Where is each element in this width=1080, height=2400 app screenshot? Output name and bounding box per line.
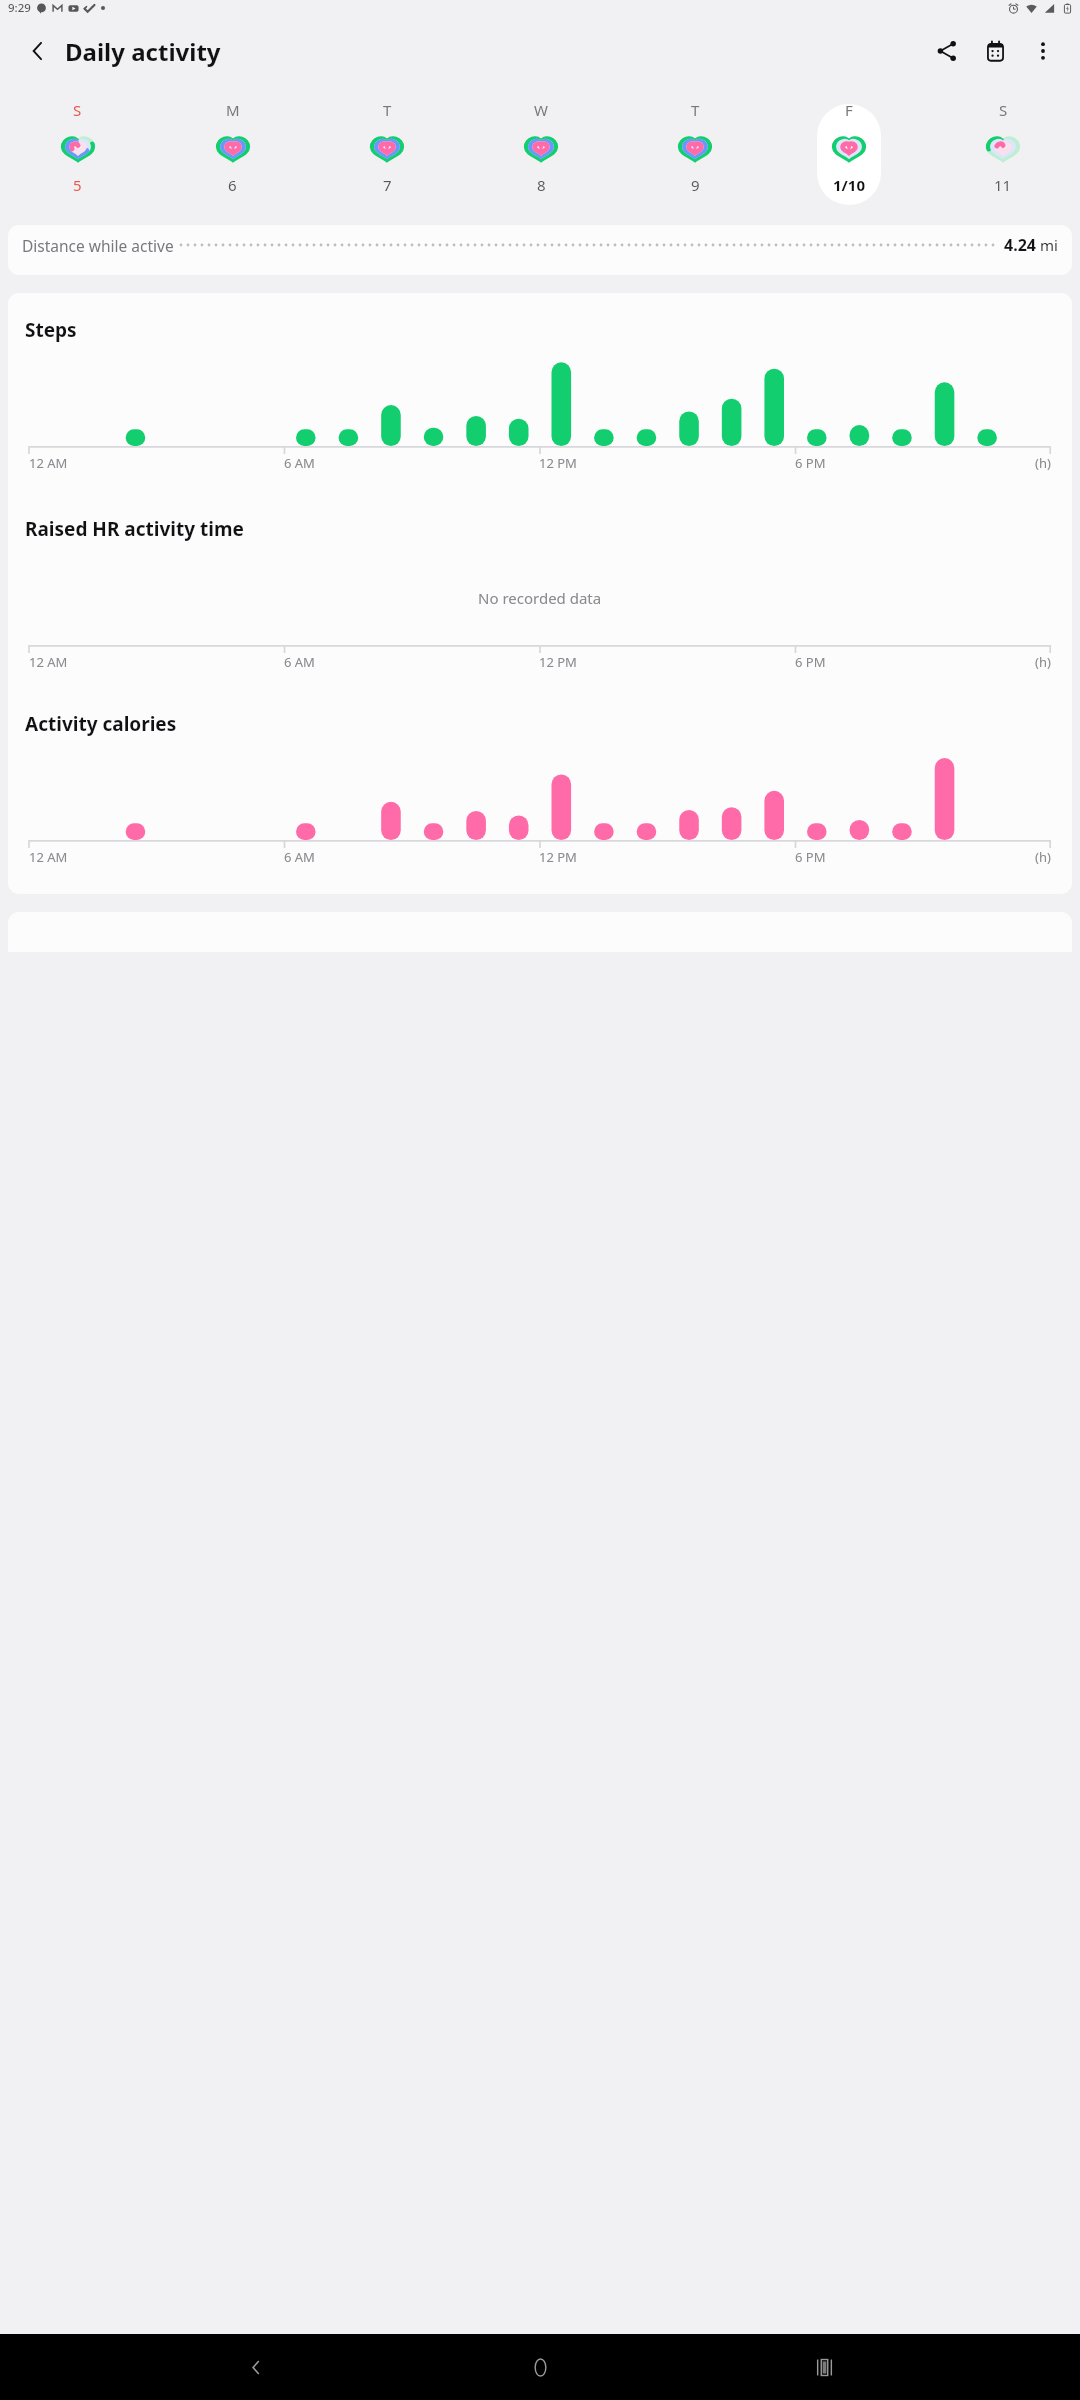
staticText: (h): [1035, 454, 1051, 472]
staticText: Activity calories: [25, 711, 177, 737]
button[interactable]: W: [464, 100, 618, 205]
staticText: (h): [1035, 653, 1051, 671]
staticText: 6 PM: [795, 848, 826, 866]
staticText: M: [226, 100, 240, 120]
staticText: T: [383, 100, 392, 120]
staticText: 8: [537, 175, 546, 195]
staticText: 9:29: [8, 0, 31, 16]
staticText: 11: [994, 175, 1012, 195]
staticText: T: [691, 100, 700, 120]
staticText: 12 PM: [539, 454, 577, 472]
staticText: 5: [73, 175, 82, 195]
staticText: 1/10: [833, 175, 865, 195]
button[interactable]: T: [310, 100, 464, 205]
button[interactable]: Back: [14, 27, 62, 75]
staticText: No recorded data: [478, 588, 602, 608]
button[interactable]: Distance while active: [8, 225, 1072, 275]
staticText: 7: [383, 175, 392, 195]
button[interactable]: Home: [512, 2339, 568, 2395]
staticText: mi: [1040, 235, 1058, 255]
staticText: 4.24: [1004, 234, 1036, 256]
staticText: F: [845, 100, 853, 120]
staticText: 12 PM: [539, 848, 577, 866]
staticText: S: [999, 100, 1008, 120]
staticText: 6 PM: [795, 653, 826, 671]
staticText: 12 AM: [29, 454, 68, 472]
staticText: 6 AM: [284, 653, 315, 671]
button[interactable]: F: [772, 100, 926, 205]
staticText: 12 PM: [539, 653, 577, 671]
button[interactable]: More options: [1020, 28, 1066, 74]
staticText: 6 AM: [284, 848, 315, 866]
button[interactable]: T: [618, 100, 772, 205]
button[interactable]: S: [0, 100, 155, 205]
staticText: 12 AM: [29, 653, 68, 671]
staticText: S: [73, 100, 82, 120]
staticText: Distance while active: [22, 235, 174, 256]
staticText: Daily activity: [65, 35, 221, 68]
staticText: Steps: [25, 317, 77, 343]
button[interactable]: Back: [228, 2339, 284, 2395]
staticText: Raised HR activity time: [25, 516, 244, 542]
button[interactable]: Recent apps: [796, 2339, 852, 2395]
staticText: 12 AM: [29, 848, 68, 866]
staticText: 6 PM: [795, 454, 826, 472]
staticText: (h): [1035, 848, 1051, 866]
staticText: 9: [691, 175, 700, 195]
staticText: 6: [228, 175, 237, 195]
button[interactable]: Share: [924, 28, 970, 74]
staticText: 6 AM: [284, 454, 315, 472]
button[interactable]: S: [926, 100, 1080, 205]
staticText: W: [534, 100, 548, 120]
button[interactable]: Calendar: [972, 28, 1018, 74]
button[interactable]: M: [155, 100, 310, 205]
